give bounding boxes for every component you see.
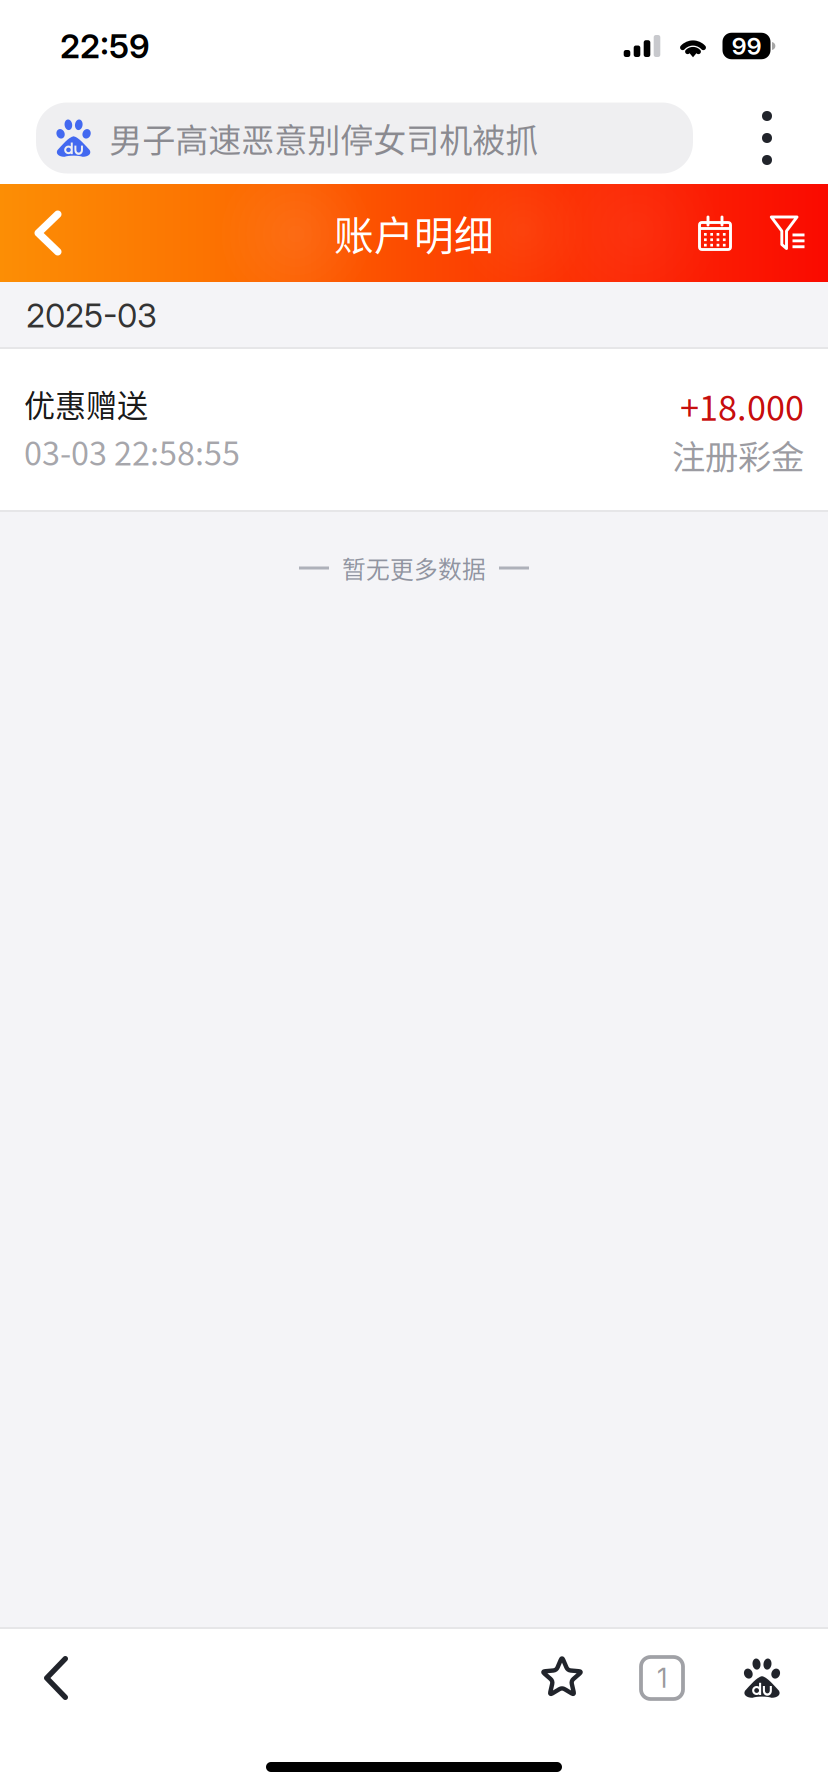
button[interactable]: Back bbox=[0, 184, 96, 282]
button[interactable]: Bookmark bbox=[512, 1629, 612, 1727]
button[interactable]: Pick date bbox=[677, 184, 753, 282]
staticText: 优惠赠送 bbox=[24, 381, 148, 426]
button[interactable]: More options bbox=[729, 102, 805, 173]
staticText: 账户明细 bbox=[334, 204, 494, 262]
staticText: 暂无更多数据 bbox=[342, 551, 486, 585]
button[interactable]: Back bbox=[0, 1629, 112, 1727]
staticText: 1 bbox=[657, 1662, 667, 1694]
staticText: +18.000 bbox=[680, 381, 804, 431]
staticText: 男子高速恶意别停女司机被抓 bbox=[109, 114, 538, 162]
staticText: 03-03 22:58:55 bbox=[24, 428, 240, 475]
button[interactable]: 男子高速恶意别停女司机被抓 bbox=[36, 102, 693, 173]
button[interactable]: Baidu home bbox=[712, 1629, 812, 1727]
staticText: 注册彩金 bbox=[672, 431, 804, 479]
button[interactable]: 优惠赠送 bbox=[0, 349, 828, 512]
staticText: 99 bbox=[731, 31, 761, 60]
button[interactable]: Tabs bbox=[612, 1629, 712, 1727]
button[interactable]: Filter bbox=[753, 184, 824, 282]
staticText: 22:59 bbox=[60, 26, 150, 66]
staticText: 2025-03 bbox=[26, 296, 157, 335]
